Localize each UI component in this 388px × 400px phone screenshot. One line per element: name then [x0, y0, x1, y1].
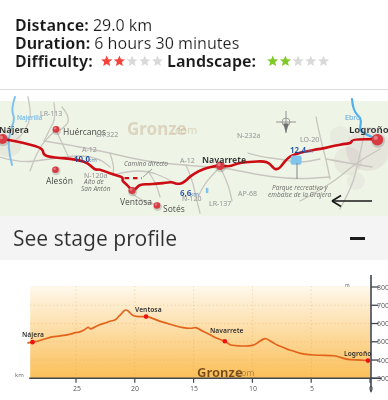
staticText: Distance: 29.0 km	[15, 14, 153, 36]
staticText: N-120a	[84, 171, 108, 181]
staticText: km	[15, 371, 24, 379]
staticText: N-120	[182, 194, 202, 204]
staticText: AP-68	[238, 189, 257, 199]
staticText: km	[304, 147, 313, 155]
staticText: 500	[377, 337, 388, 347]
staticText: Navarrete	[210, 326, 244, 335]
staticText: 800	[377, 283, 388, 293]
staticText: .com	[172, 122, 198, 137]
staticText: Najerilla	[17, 113, 43, 122]
staticText: Gronze	[197, 363, 243, 381]
staticText: LR-322	[96, 130, 119, 140]
staticText: Huércanos	[63, 126, 107, 138]
staticText: See stage profile	[13, 224, 178, 253]
staticText: A-12	[180, 156, 195, 166]
staticText: 0	[369, 384, 374, 394]
staticText: Parque recreativo y	[272, 183, 328, 192]
staticText: .com	[235, 367, 255, 379]
staticText: 400	[377, 356, 388, 366]
staticText: San Antón	[81, 184, 111, 193]
staticText: km	[190, 190, 199, 198]
staticText: Gronze	[127, 117, 187, 140]
staticText: 6,6	[180, 187, 192, 198]
staticText: LR-113	[40, 109, 63, 119]
staticText: LR-137	[209, 199, 232, 209]
staticText: Ebro	[345, 113, 361, 123]
staticText: 5	[310, 384, 315, 394]
staticText: Nájera	[0, 123, 29, 135]
staticText: Sotés	[163, 203, 185, 215]
staticText: Landscape:	[167, 50, 257, 72]
staticText: km	[88, 156, 97, 164]
staticText: Logroño	[344, 349, 372, 358]
staticText: Ventosa	[120, 196, 153, 208]
staticText: 600	[377, 319, 388, 329]
staticText: A-12	[82, 145, 97, 155]
staticText: m	[345, 282, 350, 289]
staticText: 10,0	[74, 153, 91, 164]
staticText: Duration: 6 hours 30 minutes	[15, 32, 240, 54]
staticText: N-232a	[237, 131, 261, 141]
staticText: 300	[377, 374, 388, 384]
staticText: 700	[377, 301, 388, 311]
button[interactable]: See stage profile	[0, 216, 388, 260]
staticText: Ventosa	[135, 305, 162, 314]
staticText: 20	[131, 384, 140, 394]
staticText: Difficulty:	[15, 50, 93, 72]
staticText: 15	[190, 384, 199, 394]
other: Collapse	[345, 226, 369, 250]
staticText: 25	[73, 384, 82, 394]
staticText: Navarrete	[202, 154, 247, 166]
staticText: LO-20	[300, 135, 320, 145]
staticText: Camino directo	[124, 159, 168, 168]
staticText: Logroño	[349, 123, 388, 136]
staticText: Alto de	[84, 177, 104, 186]
staticText: Alesón	[46, 175, 73, 187]
staticText: Nájera	[22, 330, 44, 339]
staticText: 12,4	[290, 144, 307, 155]
staticText: embalse de la Grajera	[268, 190, 332, 199]
button[interactable]: Back	[330, 192, 374, 210]
staticText: 10	[249, 384, 258, 394]
